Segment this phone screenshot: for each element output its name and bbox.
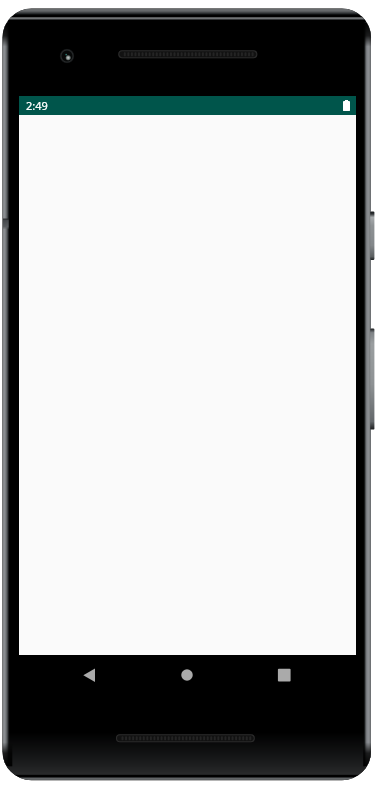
button[interactable]: Recent apps (276, 667, 292, 683)
button[interactable]: Home (179, 667, 195, 683)
staticText: 2:49 (26, 98, 48, 113)
button[interactable]: Back (81, 667, 97, 683)
